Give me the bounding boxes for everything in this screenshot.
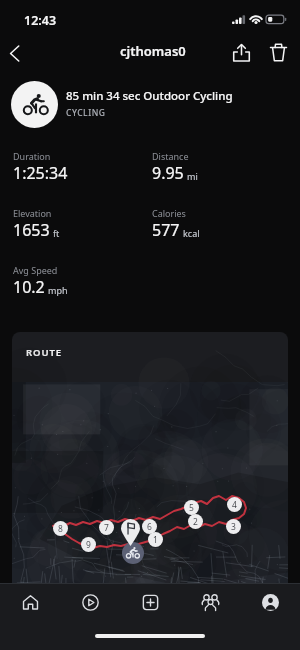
button[interactable]: Home [0,584,60,621]
staticText: Duration [13,150,51,162]
button[interactable]: Profile [240,584,300,621]
staticText: 5 [189,502,194,514]
staticText: Calories [152,207,186,219]
staticText: 9 [86,539,91,551]
staticText: 10.2 [13,276,45,298]
staticText: 1653 [13,219,50,241]
staticText: kcal [183,227,200,239]
button[interactable]: Add [120,584,180,621]
staticText: 2 [193,516,198,528]
button[interactable]: Back [1,39,29,67]
staticText: 3 [231,521,236,533]
staticText: 1:25:34 [13,162,68,184]
staticText: 7 [104,522,109,534]
staticText: 9.95 [152,162,184,184]
staticText: 12:43 [24,12,57,29]
staticText: 577 [152,219,180,241]
button[interactable]: Groups [180,584,240,621]
button[interactable]: Delete [264,38,292,66]
staticText: Elevation [13,207,52,219]
staticText: mph [48,284,68,296]
staticText: 6 [147,521,152,533]
staticText: 8 [58,523,63,535]
staticText: cjthomas0 [120,42,186,60]
staticText: ROUTE [26,346,62,359]
button[interactable]: Share [227,38,255,66]
staticText: Distance [152,150,189,162]
staticText: 4 [232,499,237,511]
staticText: Avg Speed [13,264,58,276]
staticText: 85 min 34 sec Outdoor Cycling [66,88,233,104]
button[interactable]: Activity [60,584,120,621]
staticText: CYCLING [66,107,106,119]
staticText: ft [53,227,60,239]
staticText: mi [187,170,198,182]
staticText: 1 [153,534,158,546]
